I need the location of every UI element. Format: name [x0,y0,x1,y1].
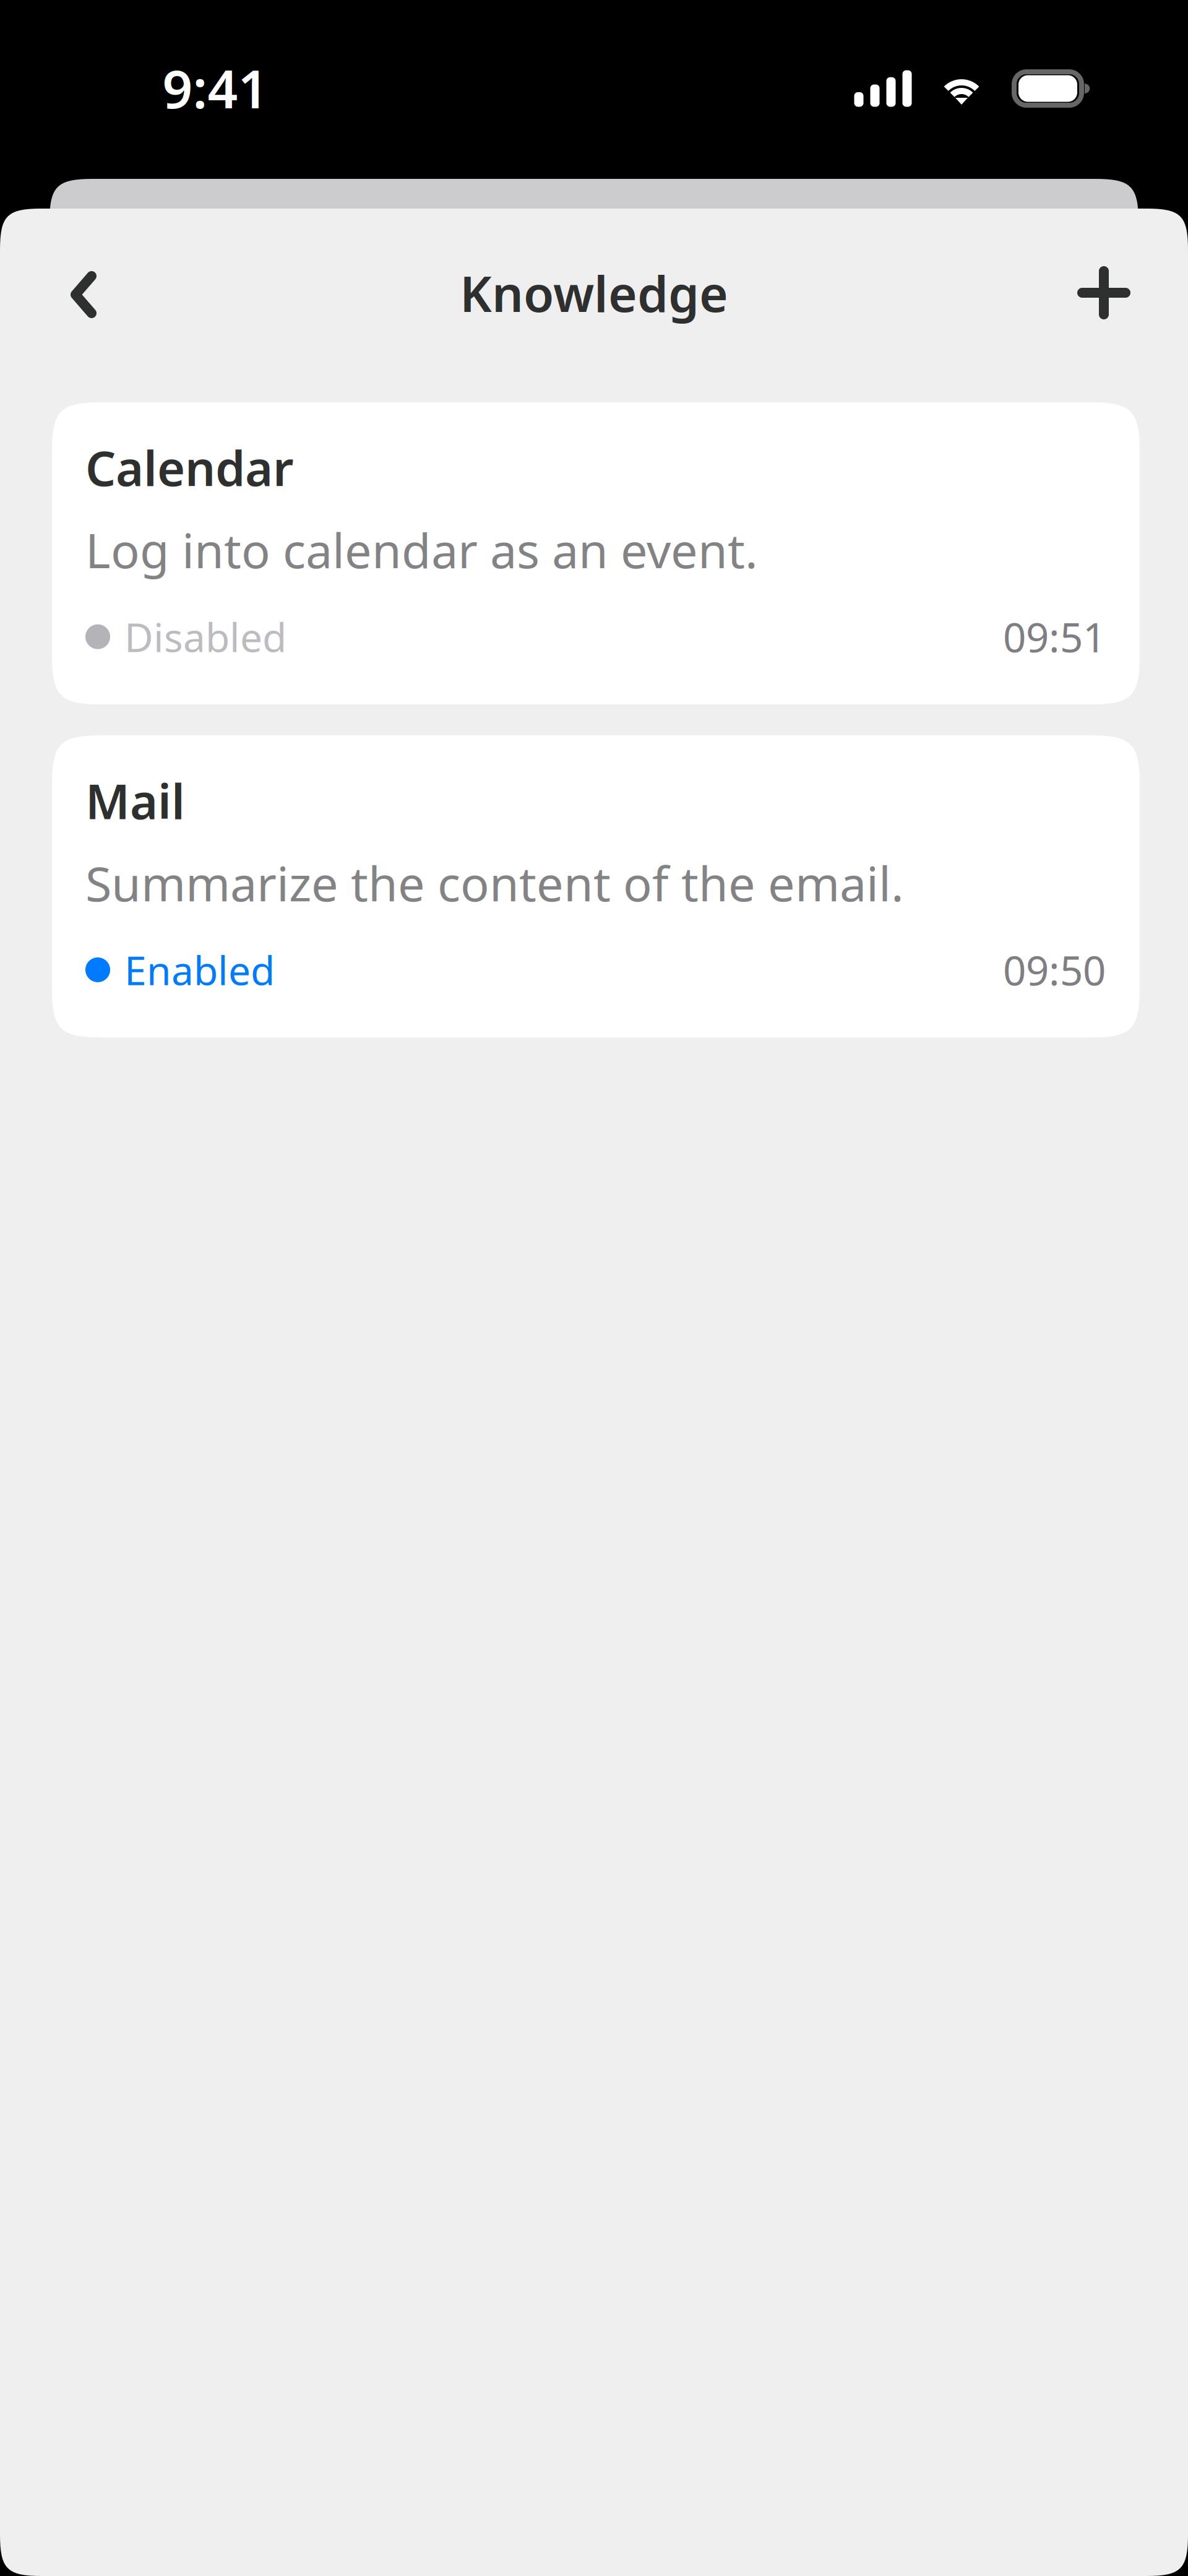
staticText: 9:41 [162,53,268,123]
staticText: Summarize the content of the email. [85,851,904,914]
button[interactable]: Add [1044,249,1130,336]
button[interactable]: Calendar [52,402,1140,704]
staticText: 09:50 [1003,943,1106,997]
staticText: Calendar [85,436,294,499]
button[interactable]: Mail [52,735,1140,1037]
staticText: Enabled [124,944,275,996]
staticText: 09:51 [1003,610,1106,664]
staticText: Knowledge [460,260,728,326]
staticText: Disabled [124,610,286,663]
staticText: Mail [85,769,185,832]
button[interactable]: Back [71,249,157,336]
staticText: Log into calendar as an event. [85,518,758,581]
